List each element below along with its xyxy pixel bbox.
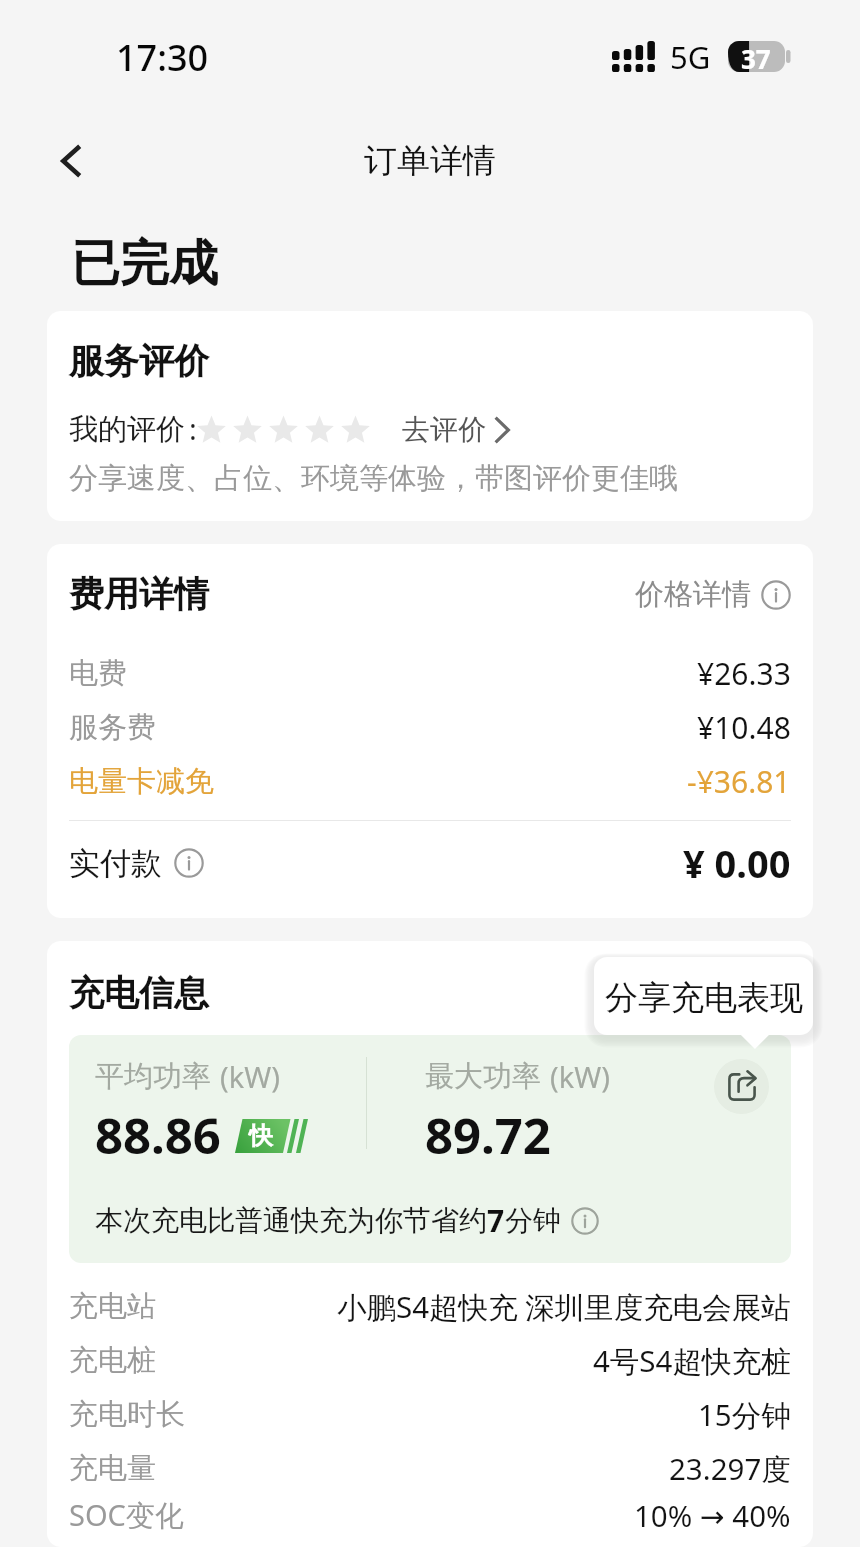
staticText: 37 [741,41,771,72]
staticText: 分享充电表现 [605,977,803,1019]
staticText: 充电桩 [69,1342,156,1379]
staticText: 充电时长 [69,1396,185,1433]
staticText: 充电量 [69,1450,156,1487]
staticText: 17:30 [116,33,209,82]
staticText: 23.297度 [669,1448,791,1488]
staticText: 充电信息 [69,971,209,1015]
staticText: ¥26.33 [697,653,791,694]
staticText: 小鹏S4超快充 深圳里度充电会展站 [337,1286,791,1326]
staticText: 4号S4超快充桩 [593,1340,791,1380]
staticText: (kW) [220,1057,280,1096]
staticText: 电费 [69,655,127,692]
button[interactable]: 价格详情 [635,576,791,613]
staticText: 5G [670,36,711,78]
staticText: 本次充电比普通快充为你节省约 [95,1203,487,1238]
staticText: 实付款 [69,844,162,883]
staticText: 已完成 [71,233,218,295]
button[interactable]: Back [38,128,104,194]
staticText: 平均功率 [95,1058,211,1095]
staticText: 10% → 40% [634,1495,791,1531]
staticText: 订单详情 [364,140,496,182]
staticText: 电量卡减免 [69,763,214,800]
staticText: 服务费 [69,709,156,746]
staticText: 去评价 [402,412,486,447]
staticText: (kW) [550,1057,610,1096]
staticText: 15分钟 [698,1394,791,1434]
staticText: 88.86 [95,1102,221,1169]
staticText: : [189,409,197,448]
staticText: ¥ 0.00 [683,837,791,889]
button[interactable]: 分享充电表现 [584,947,823,1059]
staticText: 分享速度、占位、环境等体验，带图评价更佳哦 [69,460,678,497]
staticText: 服务评价 [69,339,209,383]
staticText: -¥36.81 [687,761,791,802]
staticText: 最大功率 [425,1058,541,1095]
staticText: ¥10.48 [697,707,791,748]
staticText: 价格详情 [635,576,751,613]
staticText: SOC变化 [69,1495,184,1531]
staticText: 89.72 [425,1102,551,1169]
button[interactable]: 去评价 [402,412,510,447]
staticText: 分钟 [505,1203,561,1238]
button[interactable]: Share [714,1059,769,1114]
staticText: 充电站 [69,1288,156,1325]
staticText: 7 [487,1200,505,1241]
staticText: 我的评价 [69,411,185,448]
staticText: 快 [249,1121,273,1151]
staticText: 费用详情 [69,572,209,616]
